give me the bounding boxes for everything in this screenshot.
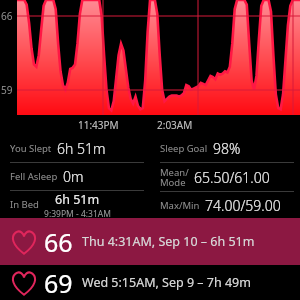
staticText: Wed 5:15AM, Sep 9 – 7h 49m <box>82 274 251 291</box>
staticText: 66 <box>1 9 13 23</box>
staticText: 11:43PM <box>78 118 119 132</box>
staticText: 65.50/61.00 <box>194 168 270 187</box>
staticText: 69 <box>44 266 73 300</box>
button[interactable]: Sleep Goal <box>150 135 300 162</box>
staticText: 2:03AM <box>157 118 193 132</box>
staticText: 9:39PM - 4:31AM <box>44 208 111 218</box>
button[interactable]: Overnight heart rate chart <box>0 0 300 135</box>
staticText: 6h 51m <box>57 139 106 158</box>
button[interactable]: In Bed <box>0 191 150 218</box>
other: Heart rate <box>10 229 38 255</box>
staticText: Mean/ Mode <box>160 166 189 189</box>
staticText: 59 <box>1 83 13 97</box>
staticText: 66 <box>44 225 73 259</box>
staticText: Sleep Goal <box>160 142 208 155</box>
button[interactable]: You Slept <box>0 135 150 162</box>
staticText: 98% <box>213 139 241 158</box>
staticText: Thu 4:31AM, Sep 10 – 6h 51m <box>82 233 255 250</box>
staticText: 6h 51m <box>55 191 100 208</box>
button[interactable]: Mean/ Mode <box>150 163 300 191</box>
staticText: Fell Asleep <box>10 170 58 183</box>
staticText: Max/Min <box>160 199 200 212</box>
staticText: 0m <box>63 167 84 186</box>
staticText: In Bed <box>10 198 39 211</box>
button[interactable]: Heart rate <box>0 218 300 265</box>
other: Heart rate <box>10 270 38 296</box>
button[interactable]: Heart rate <box>0 265 300 300</box>
staticText: You Slept <box>10 142 52 155</box>
button[interactable]: Max/Min <box>150 192 300 218</box>
button[interactable]: Fell Asleep <box>0 163 150 190</box>
staticText: 74.00/59.00 <box>205 196 281 215</box>
